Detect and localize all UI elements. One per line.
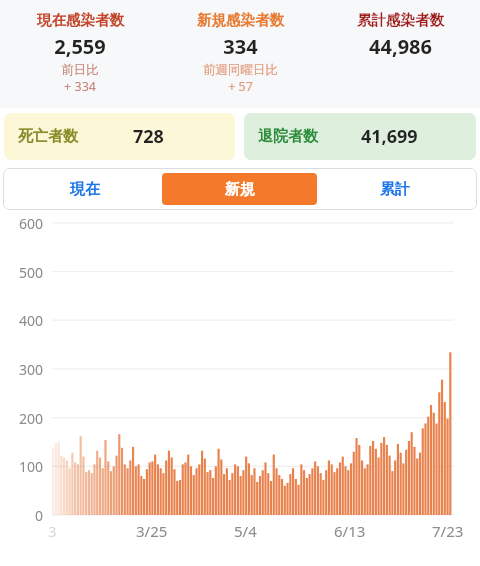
staticText: 500 — [19, 263, 44, 282]
staticText: 100 — [19, 457, 44, 476]
staticText: 334 — [223, 33, 258, 60]
button[interactable]: 死亡者数 — [4, 113, 235, 160]
staticText: + 57 — [228, 78, 253, 95]
staticText: + 334 — [64, 78, 96, 95]
staticText: 新規感染者数 — [197, 11, 284, 29]
staticText: 死亡者数 — [18, 127, 78, 146]
staticText: 2,559 — [54, 33, 106, 60]
staticText: 現在 — [70, 180, 100, 199]
staticText: 300 — [19, 360, 44, 379]
staticText: 600 — [19, 214, 44, 233]
staticText: 7/23 — [432, 521, 464, 541]
staticText: 累計感染者数 — [357, 11, 444, 29]
button[interactable]: 新規 — [162, 173, 317, 205]
button[interactable]: 現在感染者数 — [0, 0, 160, 108]
button[interactable]: 退院者数 — [244, 113, 476, 160]
staticText: 現在感染者数 — [37, 11, 124, 29]
staticText: 44,986 — [369, 33, 432, 60]
staticText: 新規 — [225, 180, 255, 199]
button[interactable]: 累計 — [317, 173, 472, 205]
staticText: 0 — [35, 506, 44, 525]
staticText: 退院者数 — [258, 127, 318, 146]
staticText: 前週同曜日比 — [203, 62, 278, 78]
button[interactable]: 新規感染者数 — [160, 0, 320, 108]
staticText: 400 — [19, 311, 44, 330]
staticText: 6/13 — [334, 521, 366, 541]
staticText: 前日比 — [61, 62, 99, 78]
staticText: 3/25 — [136, 521, 168, 541]
staticText: 200 — [19, 409, 44, 428]
staticText: 41,699 — [361, 124, 418, 149]
staticText: 3 — [48, 521, 57, 541]
button[interactable]: 現在 — [8, 173, 162, 205]
staticText: 累計 — [380, 180, 410, 199]
staticText: 728 — [133, 124, 164, 149]
button[interactable]: 累計感染者数 — [320, 0, 480, 108]
staticText: 5/4 — [234, 521, 257, 541]
